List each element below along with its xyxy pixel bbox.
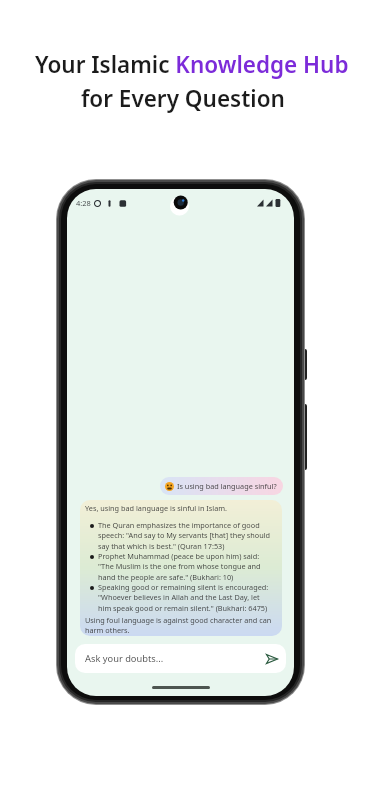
staticText: Is using bad language sinful?	[177, 481, 277, 491]
staticText: 4:28	[76, 198, 91, 208]
staticText: Prophet Muhammad (peace be upon him) sai…	[98, 551, 272, 582]
button[interactable]: Is using bad language sinful?	[160, 477, 283, 495]
staticText: for Every Question	[81, 83, 285, 114]
staticText: Using foul language is against good char…	[85, 615, 277, 633]
staticText: Ask your doubts...	[85, 652, 164, 665]
staticText: Speaking good or remaining silent is enc…	[98, 582, 272, 613]
staticText: The Quran emphasizes the importance of g…	[98, 520, 272, 551]
staticText: Your Islamic Knowledge Hub	[35, 49, 349, 80]
button[interactable]: Yes, using bad language is sinful in Isl…	[80, 500, 282, 636]
staticText: Yes, using bad language is sinful in Isl…	[85, 503, 228, 513]
button[interactable]: Ask your doubts...	[75, 644, 286, 673]
